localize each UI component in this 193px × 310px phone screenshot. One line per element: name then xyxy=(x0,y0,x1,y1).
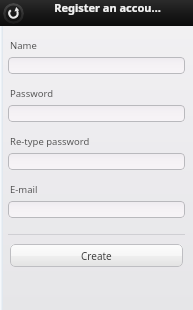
button[interactable] xyxy=(8,105,185,122)
button[interactable] xyxy=(8,201,185,218)
staticText: Password xyxy=(10,87,53,100)
button[interactable] xyxy=(8,57,185,74)
staticText: Name xyxy=(10,39,37,52)
staticText: Create xyxy=(81,249,112,263)
staticText: Register an accou… xyxy=(30,0,185,15)
staticText: E-mail xyxy=(10,183,38,196)
staticText: Re-type password xyxy=(10,135,90,148)
button[interactable]: Back xyxy=(3,3,24,24)
button[interactable]: Create xyxy=(10,244,183,267)
button[interactable] xyxy=(8,153,185,170)
